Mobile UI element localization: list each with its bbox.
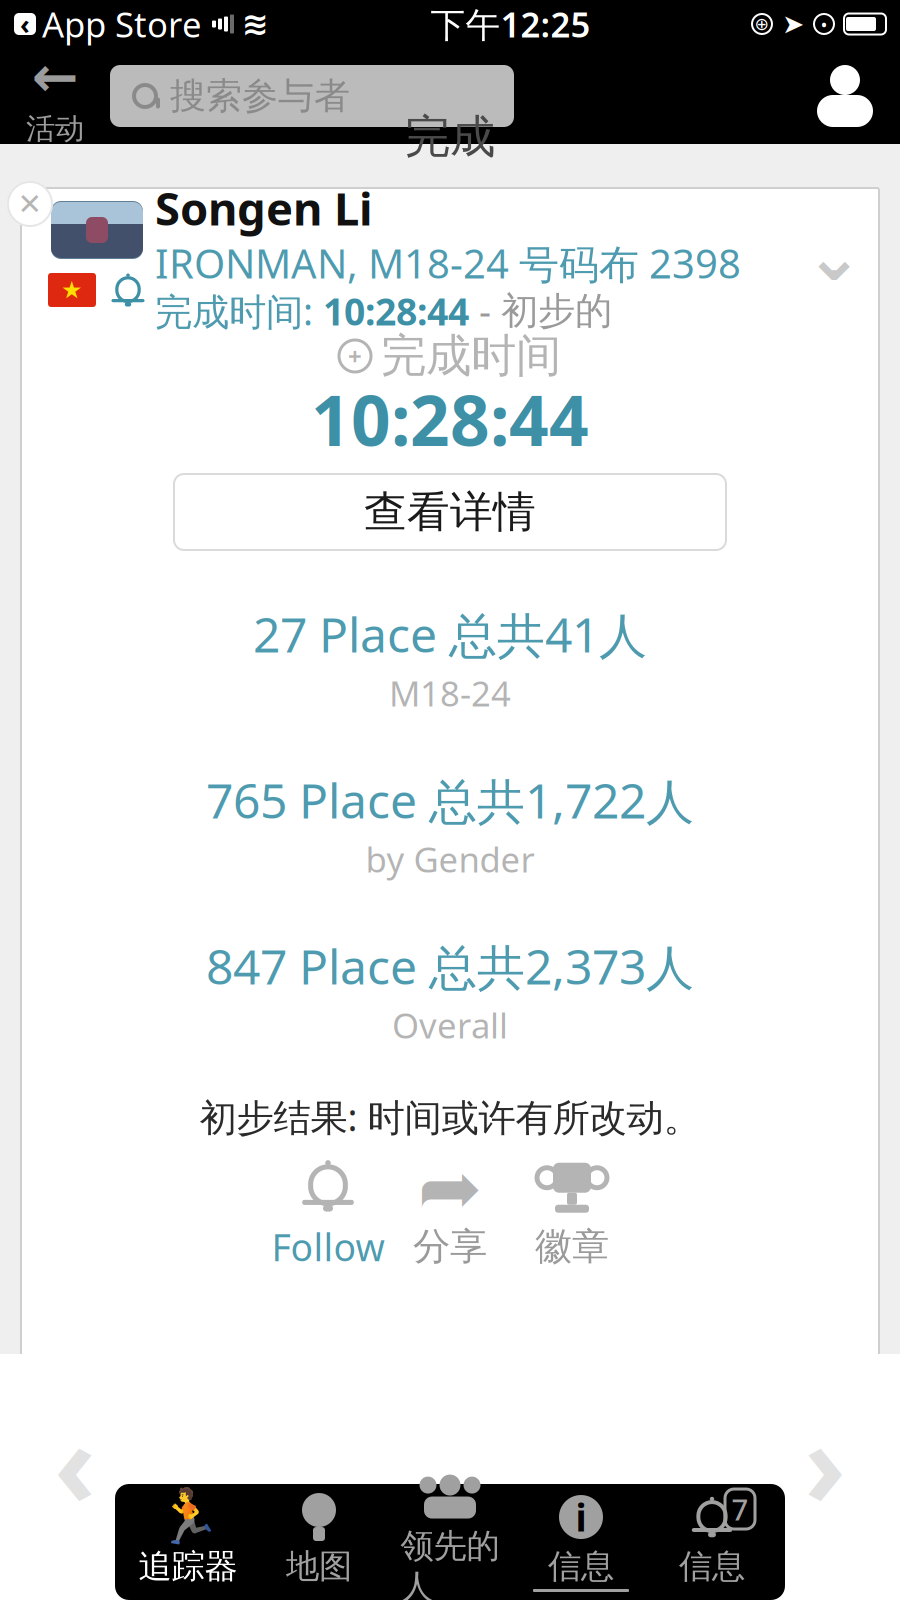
staticText: 活动 — [26, 111, 84, 147]
button[interactable]: 展开 — [789, 211, 879, 301]
staticText: Songen Li — [155, 178, 373, 238]
staticText: 搜索参与者 — [170, 74, 350, 118]
staticText: IRONMAN, M18-24 号码布 2398 — [155, 236, 741, 290]
staticText: ≋ — [242, 6, 269, 42]
button[interactable]: 下一个 — [770, 1397, 880, 1527]
staticText: • — [820, 12, 827, 36]
staticText: 分享 — [413, 1224, 487, 1270]
button[interactable]: 7 — [646, 1486, 777, 1598]
button[interactable]: 领先的人 — [384, 1486, 515, 1598]
staticText: M18-24 — [389, 670, 511, 716]
button[interactable]: 搜索参与者 — [110, 65, 514, 127]
staticText: 完成时间: — [155, 286, 323, 336]
staticText: ⊕ — [754, 14, 769, 34]
staticText: ⌄ — [805, 217, 863, 295]
staticText: 初步结果: 时间或许有所改动。 — [199, 1092, 700, 1142]
staticText: ✕ — [17, 187, 42, 221]
staticText: ★ — [61, 276, 83, 304]
button[interactable]: 上一个 — [20, 1397, 130, 1527]
staticText: App Store — [42, 1, 202, 47]
staticText: 初步的 — [501, 288, 612, 334]
staticText: 信息 — [679, 1546, 745, 1587]
staticText: 完成时间 — [381, 328, 561, 384]
staticText: 下午12:25 — [430, 1, 590, 47]
staticText: + — [348, 340, 362, 372]
button[interactable]: Follow — [267, 1160, 389, 1268]
staticText: 完成 — [405, 109, 495, 165]
staticText: Overall — [392, 1002, 508, 1048]
button[interactable]: 返回 活动 — [0, 48, 110, 144]
staticText: 10:28:44 — [323, 286, 469, 336]
staticText: 27 Place 总共41人 — [253, 602, 647, 666]
staticText: 7 — [731, 1490, 748, 1529]
staticText: ← — [31, 45, 78, 109]
button[interactable]: i — [515, 1486, 646, 1598]
staticText: 信息 — [548, 1546, 614, 1587]
staticText: › — [804, 1386, 846, 1538]
button[interactable]: ➦ — [389, 1160, 511, 1268]
button[interactable]: 地图 — [253, 1486, 384, 1598]
button[interactable]: 关闭 — [4, 178, 56, 230]
staticText: - — [469, 286, 501, 336]
button[interactable]: 徽章 — [511, 1160, 633, 1268]
staticText: 追踪器 — [138, 1546, 237, 1587]
staticText: 领先的人 — [400, 1526, 499, 1600]
staticText: i — [575, 1492, 586, 1542]
button[interactable]: 查看详情 — [174, 474, 726, 550]
button[interactable]: 🏃 — [122, 1486, 253, 1598]
staticText: 10:28:44 — [311, 373, 589, 465]
staticText: 地图 — [286, 1546, 352, 1587]
staticText: ➤ — [782, 9, 804, 39]
staticText: 765 Place 总共1,722人 — [206, 768, 694, 832]
staticText: ➦ — [417, 1144, 482, 1232]
staticText: ‹ — [54, 1386, 96, 1538]
staticText: 查看详情 — [364, 486, 536, 538]
staticText: 徽章 — [535, 1224, 609, 1270]
staticText: 847 Place 总共2,373人 — [206, 934, 694, 998]
button[interactable]: 个人资料 — [790, 48, 900, 144]
staticText: by Gender — [365, 836, 534, 882]
staticText: ‹ — [20, 6, 30, 42]
staticText: 🏃 — [155, 1487, 221, 1547]
staticText: Follow — [271, 1222, 384, 1271]
